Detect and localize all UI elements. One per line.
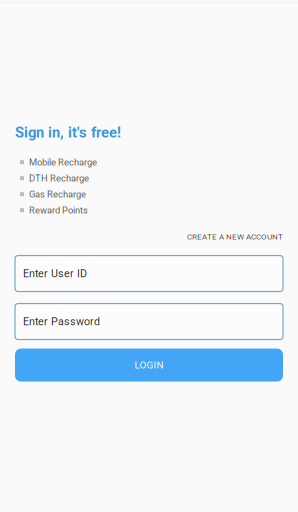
button[interactable]: Enter User ID — [15, 256, 283, 292]
staticText: DTH Recharge — [29, 173, 89, 184]
staticText: Enter User ID — [23, 267, 87, 280]
button[interactable]: Enter Password — [15, 304, 283, 340]
button[interactable]: CREATE A NEW ACCOUNT — [187, 230, 283, 244]
button[interactable]: LOGIN — [15, 349, 283, 382]
staticText: Enter Password — [23, 315, 100, 328]
staticText: CREATE A NEW ACCOUNT — [187, 232, 283, 242]
staticText: Gas Recharge — [29, 189, 86, 200]
staticText: Mobile Recharge — [29, 157, 97, 168]
staticText: Sign in, it's free! — [15, 124, 121, 141]
staticText: LOGIN — [134, 359, 163, 371]
staticText: Reward Points — [29, 205, 88, 216]
